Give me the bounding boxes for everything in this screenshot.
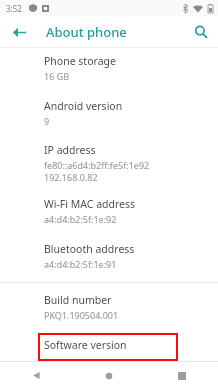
- button[interactable]: IP address: [0, 143, 218, 183]
- staticText: Android version: [44, 99, 123, 113]
- button[interactable]: Search: [189, 20, 213, 44]
- staticText: 3:52: [6, 3, 22, 14]
- staticText: a4:d4:b2:5f:1e:92: [44, 213, 117, 225]
- button[interactable]: Home: [72, 362, 145, 389]
- staticText: Build number: [44, 293, 112, 307]
- staticText: Phone storage: [44, 54, 116, 68]
- staticText: IP address: [44, 143, 96, 157]
- button[interactable]: Back: [0, 362, 72, 389]
- button[interactable]: Software version: [38, 333, 178, 361]
- button[interactable]: Back: [7, 20, 31, 44]
- button[interactable]: Phone storage: [0, 54, 218, 82]
- button[interactable]: Build number: [0, 293, 218, 321]
- staticText: 16 GB: [44, 70, 70, 82]
- staticText: About phone: [46, 23, 127, 41]
- staticText: PKQ1.190504.001: [44, 309, 119, 321]
- staticText: 192.168.0.82: [44, 171, 98, 183]
- button[interactable]: Bluetooth address: [0, 242, 218, 270]
- button[interactable]: Android version: [0, 99, 218, 127]
- staticText: 9: [44, 115, 50, 127]
- staticText: Wi-Fi MAC address: [44, 197, 136, 211]
- staticText: a4:d4:b2:5f:1e:91: [44, 258, 117, 270]
- staticText: fe80::a6d4:b2ff:fe5f:1e92: [44, 159, 150, 171]
- staticText: Software version: [44, 338, 127, 352]
- button[interactable]: Wi-Fi MAC address: [0, 197, 218, 225]
- button[interactable]: Recent apps: [145, 362, 218, 389]
- staticText: Bluetooth address: [44, 242, 135, 256]
